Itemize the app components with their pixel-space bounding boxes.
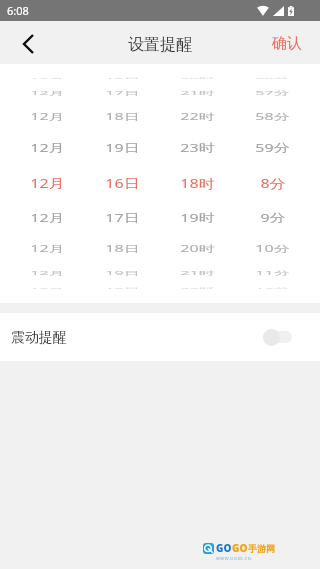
button[interactable]: 20时	[160, 242, 235, 256]
staticText: 12月	[30, 77, 65, 79]
button[interactable]: 18时	[160, 173, 235, 193]
staticText: 9分	[260, 210, 286, 226]
button[interactable]: 10分	[235, 242, 310, 256]
staticText: 12月	[30, 243, 65, 255]
staticText: 8分	[260, 175, 286, 191]
button[interactable]: 12月	[10, 110, 85, 124]
button[interactable]: 18日	[85, 242, 160, 256]
staticText: 59分	[255, 140, 290, 156]
staticText: 16日	[105, 77, 140, 79]
staticText: 56分	[255, 77, 290, 79]
button[interactable]: 8分	[235, 173, 310, 193]
button[interactable]: 20时	[160, 76, 235, 79]
button[interactable]: 12月	[10, 209, 85, 227]
staticText: 12月	[30, 269, 65, 277]
staticText: 22时	[180, 111, 215, 123]
staticText: 20时	[180, 243, 215, 255]
button[interactable]: 19日	[85, 139, 160, 157]
button[interactable]: 22时	[160, 286, 235, 289]
button[interactable]: 17日	[85, 89, 160, 97]
staticText: 58分	[255, 111, 290, 123]
staticText: 12月	[30, 140, 65, 156]
staticText: 18时	[180, 175, 215, 191]
staticText: 16日	[105, 175, 140, 191]
staticText: 12分	[255, 287, 290, 289]
staticText: 20时	[180, 77, 215, 79]
button[interactable]: 12月	[10, 89, 85, 97]
staticText: 22时	[180, 287, 215, 289]
staticText: 19日	[105, 269, 140, 277]
staticText: 震动提醒	[11, 329, 67, 347]
staticText: 18日	[105, 111, 140, 123]
staticText: 10分	[255, 243, 290, 255]
button[interactable]: 21时	[160, 89, 235, 97]
staticText: 19日	[105, 140, 140, 156]
staticText: 12月	[30, 111, 65, 123]
button[interactable]: 59分	[235, 139, 310, 157]
button[interactable]: 12月	[10, 286, 85, 289]
button[interactable]: 12月	[10, 139, 85, 157]
staticText: 设置提醒	[128, 35, 192, 55]
staticText: 12月	[30, 287, 65, 289]
button[interactable]: 确认	[258, 21, 320, 64]
staticText: 18日	[105, 243, 140, 255]
staticText: GO	[232, 541, 248, 555]
button[interactable]: 12月	[10, 76, 85, 79]
button[interactable]: 12月	[10, 242, 85, 256]
staticText: 12月	[30, 210, 65, 226]
staticText: 6:08	[7, 3, 29, 18]
button[interactable]: 12分	[235, 286, 310, 289]
button[interactable]: 22时	[160, 110, 235, 124]
button[interactable]: 58分	[235, 110, 310, 124]
button[interactable]: 21时	[160, 269, 235, 277]
button[interactable]: 19时	[160, 209, 235, 227]
button[interactable]: 16日	[85, 173, 160, 193]
staticText: 17日	[105, 210, 140, 226]
button[interactable]: 56分	[235, 76, 310, 79]
staticText: 12月	[30, 175, 65, 191]
staticText: 21时	[180, 89, 215, 97]
button[interactable]: 9分	[235, 209, 310, 227]
button[interactable]: 11分	[235, 269, 310, 277]
button[interactable]: 23时	[160, 139, 235, 157]
staticText: 57分	[255, 89, 290, 97]
staticText: 12月	[30, 89, 65, 97]
staticText: 19时	[180, 210, 215, 226]
button[interactable]: 12月	[10, 269, 85, 277]
staticText: GO	[216, 541, 232, 555]
button[interactable]: 57分	[235, 89, 310, 97]
staticText: 23时	[180, 140, 215, 156]
button[interactable]: Back	[0, 21, 50, 64]
button[interactable]: 16日	[85, 286, 160, 289]
button[interactable]: 震动提醒	[0, 313, 320, 361]
button[interactable]: 18日	[85, 110, 160, 124]
staticText: WWW.GO30.CN	[216, 556, 252, 561]
staticText: 确认	[272, 34, 302, 53]
staticText: 16日	[105, 287, 140, 289]
button[interactable]: 16日	[85, 76, 160, 79]
staticText: 手游网	[248, 543, 275, 554]
button[interactable]: 12月	[10, 173, 85, 193]
staticText: 17日	[105, 89, 140, 97]
staticText: 21时	[180, 269, 215, 277]
button[interactable]: 19日	[85, 269, 160, 277]
button[interactable]: 17日	[85, 209, 160, 227]
staticText: 11分	[255, 269, 290, 277]
